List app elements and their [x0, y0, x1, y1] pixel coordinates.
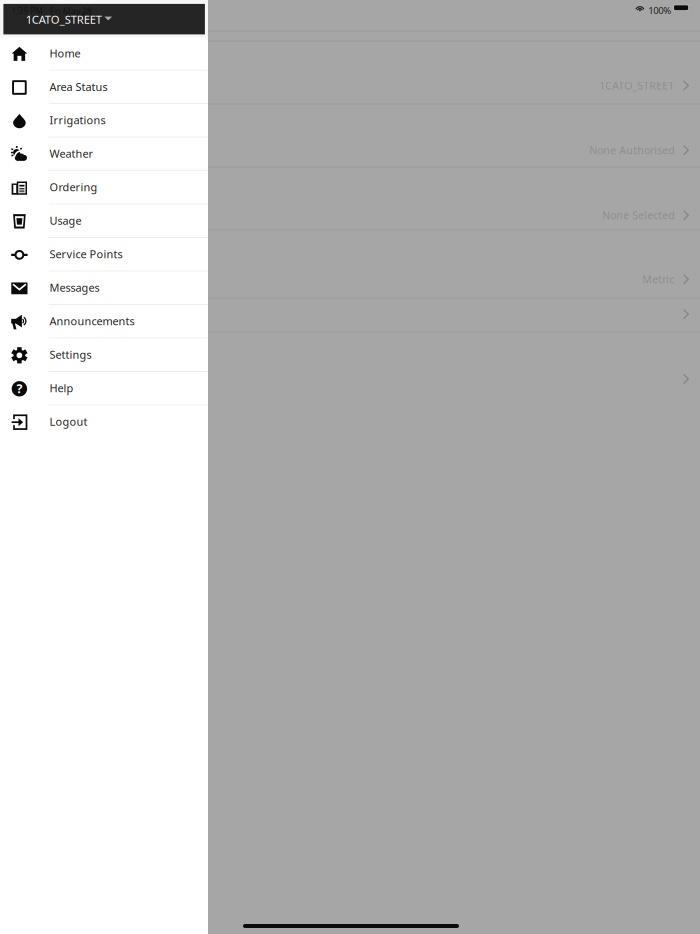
staticText: 1CATO_STREET: [26, 12, 102, 27]
staticText: Home: [49, 46, 80, 60]
staticText: Ordering: [49, 180, 97, 194]
staticText: None Selected: [602, 208, 674, 222]
button[interactable]: 1:39 PM: [3, 4, 205, 34]
button[interactable]: Area Status: [0, 71, 207, 104]
staticText: Help: [49, 381, 73, 395]
button[interactable]: Weather: [0, 138, 207, 171]
staticText: 1CATO_STREET: [599, 78, 674, 92]
button[interactable]: Announcements: [0, 305, 207, 339]
button[interactable]: Usage: [0, 205, 207, 238]
staticText: Weather: [49, 146, 93, 161]
button[interactable]: Messages: [0, 272, 207, 305]
staticText: Service Points: [49, 247, 122, 261]
staticText: Fri May 28: [50, 5, 92, 17]
staticText: ?: [16, 380, 22, 397]
staticText: Usage: [49, 213, 81, 228]
staticText: None Authorised: [589, 143, 674, 157]
button[interactable]: Service Points: [0, 238, 207, 272]
staticText: Logout: [49, 414, 87, 429]
staticText: Messages: [49, 280, 99, 295]
staticText: Metric: [642, 272, 674, 286]
button[interactable]: ?: [0, 372, 207, 406]
staticText: Settings: [49, 347, 91, 362]
button[interactable]: Settings: [0, 339, 207, 372]
button[interactable]: Home: [0, 37, 207, 71]
button[interactable]: Irrigations: [0, 104, 207, 138]
staticText: Irrigations: [49, 113, 105, 127]
staticText: 100%: [648, 4, 671, 16]
staticText: 1:39 PM: [11, 5, 42, 16]
staticText: Area Status: [49, 79, 107, 94]
staticText: Announcements: [49, 314, 134, 328]
button[interactable]: Ordering: [0, 171, 207, 205]
button[interactable]: Logout: [0, 406, 207, 439]
